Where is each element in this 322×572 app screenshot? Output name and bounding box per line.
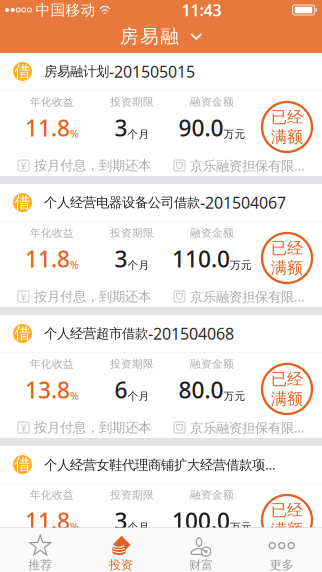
staticText: 融资金额 [190,226,234,240]
staticText: 已经 [271,107,303,127]
staticText: 个人经营女鞋代理商铺扩大经营借款项… [44,456,276,473]
staticText: 借 [14,62,30,81]
button[interactable]: 房 [110,20,212,52]
staticText: 融资金额 [190,488,234,502]
staticText: -201504067 [200,192,286,213]
button[interactable]: 推荐 [0,528,80,572]
staticText: 财富 [189,558,213,572]
staticText: 年化收益 [30,357,74,371]
staticText: -201504068 [148,323,234,344]
staticText: 易 [140,25,159,48]
staticText: ¥ [20,420,26,435]
staticText: 融资金额 [190,357,234,371]
staticText: 万元 [223,128,245,141]
staticText: % [70,257,79,272]
staticText: % [70,388,79,403]
staticText: 万元 [230,521,252,534]
staticText: ¥ [20,289,26,304]
staticText: 万元 [223,390,245,403]
staticText: 京乐融资担保有限… [190,288,305,305]
staticText: 3 [114,244,127,274]
staticText: 80.0 [178,375,223,405]
staticText: 投资期限 [110,357,154,371]
staticText: 京乐融资担保有限… [190,157,305,174]
staticText: 满额 [271,389,303,409]
staticText: 100.0 [172,506,230,536]
staticText: 投资期限 [110,95,154,109]
staticText: 个人经营电器设备公司借款 [44,194,200,211]
staticText: 110.0 [172,244,230,274]
button[interactable]: 更多 [241,528,322,572]
staticText: 中国移动 [31,1,99,19]
staticText: 投资 [109,558,133,572]
staticText: 更多 [270,558,294,572]
staticText: 借 [14,193,30,212]
button[interactable]: 借 [0,446,322,569]
button[interactable]: 财富 [161,528,241,572]
staticText: 3 [114,506,127,536]
staticText: 个月 [127,259,149,272]
staticText: 京乐融资担保有限… [190,550,305,567]
staticText: 满额 [271,258,303,278]
staticText: 融资金额 [190,95,234,109]
staticText: 借 [14,455,30,474]
staticText: 11:43 [181,0,221,21]
staticText: 借 [14,324,30,343]
staticText: 3 [114,113,127,143]
staticText: 融 [160,25,179,48]
staticText: 个月 [127,521,149,534]
staticText: 6 [114,375,127,405]
staticText: % [70,519,79,534]
staticText: 11.8 [25,506,70,536]
staticText: 年化收益 [30,95,74,109]
staticText: 房 [120,25,139,48]
staticText: 11.8 [25,244,70,274]
staticText: 个月 [127,128,149,141]
staticText: 按月付息，到期还本 [34,550,151,567]
staticText: 投资期限 [110,488,154,502]
staticText: 京乐融资担保有限… [190,419,305,436]
staticText: % [70,126,79,141]
staticText: 13.8 [25,375,70,405]
staticText: 90.0 [178,113,223,143]
staticText: 已经 [271,238,303,258]
staticText: 满额 [271,127,303,147]
staticText: 投资期限 [110,226,154,240]
staticText: 已经 [271,500,303,520]
staticText: 房易融计划 [44,63,109,80]
button[interactable]: 借 [0,315,322,438]
staticText: 年化收益 [30,226,74,240]
staticText: 按月付息，到期还本 [34,419,151,436]
staticText: 个月 [127,390,149,403]
button[interactable]: 借 [0,53,322,176]
staticText: -201505015 [109,61,195,82]
staticText: 按月付息，到期还本 [34,157,151,174]
staticText: 按月付息，到期还本 [34,288,151,305]
button[interactable]: 投资 [80,528,161,572]
staticText: 个人经营超市借款 [44,325,148,342]
staticText: 满额 [271,520,303,540]
staticText: 万元 [230,259,252,272]
staticText: 11.8 [25,113,70,143]
staticText: 已经 [271,369,303,389]
staticText: 推荐 [28,558,52,572]
button[interactable]: 借 [0,184,322,307]
staticText: ¥ [20,158,26,173]
staticText: 年化收益 [30,488,74,502]
